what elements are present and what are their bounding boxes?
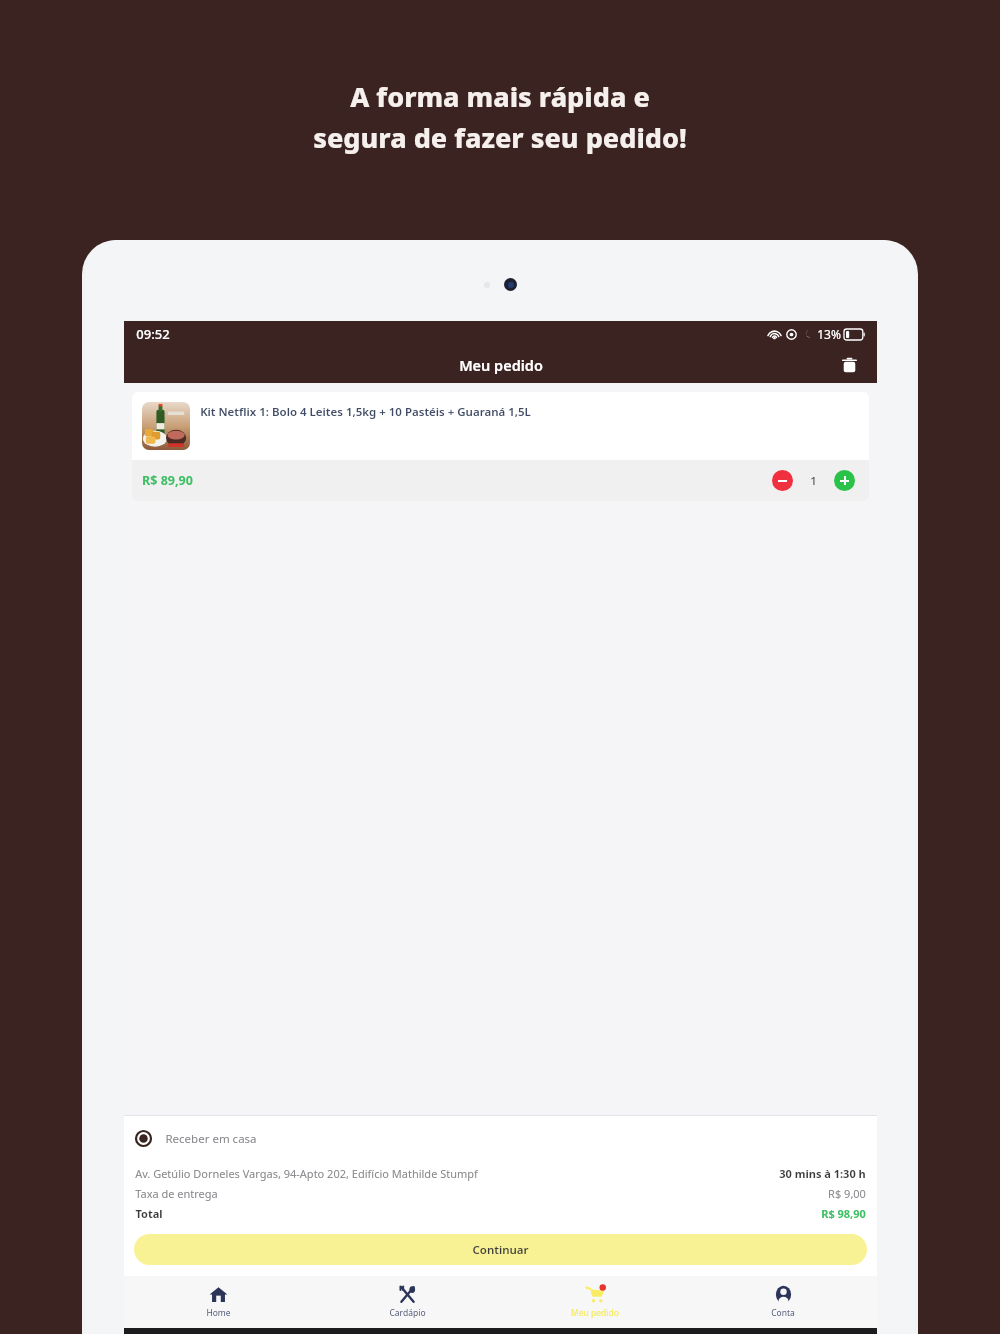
button[interactable]: Receber em casa xyxy=(124,1127,877,1150)
staticText: segura de fazer seu pedido! xyxy=(313,119,687,156)
staticText: A forma mais rápida e xyxy=(350,78,650,115)
button[interactable]: Delete order xyxy=(835,351,863,379)
staticText: 09:52 xyxy=(136,325,170,343)
staticText: Meu pedido xyxy=(459,355,543,375)
staticText: R$ 9,00 xyxy=(828,1186,866,1201)
button[interactable]: Conta xyxy=(689,1276,877,1328)
staticText: R$ 98,90 xyxy=(821,1206,866,1221)
staticText: Taxa de entrega xyxy=(135,1186,218,1201)
button[interactable]: Meu pedido xyxy=(501,1276,689,1328)
staticText: R$ 89,90 xyxy=(142,472,193,489)
staticText: Cardápio xyxy=(389,1307,426,1319)
staticText: Meu pedido xyxy=(571,1307,619,1319)
staticText: 30 mins à 1:30 h xyxy=(779,1166,866,1181)
staticText: 1 xyxy=(810,473,817,489)
button[interactable]: Increase quantity xyxy=(834,470,855,491)
staticText: Receber em casa xyxy=(165,1131,257,1147)
staticText: Home xyxy=(206,1307,231,1319)
staticText: Continuar xyxy=(472,1242,529,1258)
staticText: 13% xyxy=(817,326,841,342)
staticText: Kit Netflix 1: Bolo 4 Leites 1,5kg + 10 … xyxy=(200,404,531,420)
staticText: Av. Getúlio Dorneles Vargas, 94-Apto 202… xyxy=(135,1166,478,1181)
button[interactable]: Decrease quantity xyxy=(772,470,793,491)
button[interactable]: Cardápio xyxy=(313,1276,501,1328)
staticText: Conta xyxy=(771,1307,795,1319)
button[interactable]: Kit Netflix 1: Bolo 4 Leites 1,5kg + 10 … xyxy=(132,392,869,501)
button[interactable]: Home xyxy=(124,1276,313,1328)
button[interactable]: Continuar xyxy=(134,1234,867,1265)
staticText: Total xyxy=(135,1206,163,1221)
